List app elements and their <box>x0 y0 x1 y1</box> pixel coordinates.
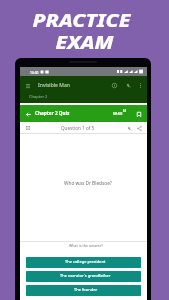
staticText: Chapter 2 Quiz <box>35 110 70 116</box>
button[interactable]: Mute audio <box>123 80 134 91</box>
button[interactable]: The narrator's grandfather <box>26 271 141 282</box>
button[interactable]: Information <box>109 80 120 91</box>
staticText: 50:50 <box>113 111 123 116</box>
staticText: 16:50 <box>30 70 39 74</box>
staticText: PRACTICE <box>32 8 131 33</box>
button[interactable]: Share <box>135 124 144 133</box>
staticText: The narrator's grandfather <box>60 273 111 278</box>
staticText: The founder <box>74 287 98 292</box>
button[interactable]: All questions <box>24 124 32 132</box>
staticText: Invisible Man <box>38 82 70 89</box>
staticText: 1 <box>124 109 126 112</box>
staticText: Chapter 2 <box>29 94 48 99</box>
button[interactable]: The college president <box>26 257 141 268</box>
staticText: What is the answer? <box>69 243 103 248</box>
button[interactable]: The founder <box>26 285 141 296</box>
staticText: Who was Dr Bledsoe? <box>64 180 112 186</box>
button[interactable]: Back <box>23 109 33 119</box>
button[interactable]: More options <box>135 80 145 90</box>
button[interactable]: Navigate up <box>23 81 32 90</box>
staticText: The college president <box>65 259 106 264</box>
button[interactable]: Bookmark <box>134 109 144 119</box>
staticText: Question 1 of 5 <box>61 125 95 131</box>
button[interactable]: Mute <box>125 124 134 133</box>
staticText: EXAM <box>55 30 114 55</box>
